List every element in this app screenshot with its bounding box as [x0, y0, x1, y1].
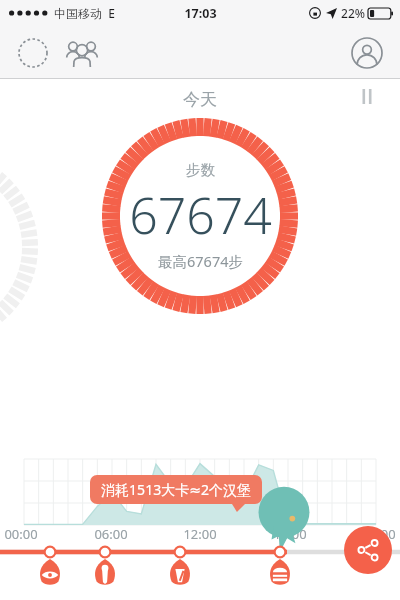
staticText: 67674: [129, 181, 272, 249]
staticText: 12:00: [183, 525, 217, 543]
staticText: 06:00: [94, 525, 128, 543]
button[interactable]: Calories tooltip: [90, 475, 262, 512]
staticText: 22%: [341, 5, 365, 21]
button[interactable]: Meal 2: [89, 544, 121, 592]
button[interactable]: Meal 3: [164, 544, 196, 592]
button[interactable]: Pause: [352, 81, 382, 111]
staticText: 18:00: [273, 525, 307, 543]
staticText: 中国移动: [54, 6, 102, 21]
button[interactable]: Meal 4: [264, 544, 296, 592]
staticText: 17:03: [184, 5, 217, 22]
staticText: E: [108, 5, 115, 21]
staticText: 今天: [183, 89, 217, 110]
button[interactable]: Activity ring: [14, 34, 52, 72]
button[interactable]: Meal 1: [34, 544, 66, 592]
staticText: 步数: [186, 161, 215, 179]
staticText: 最高67674步: [158, 251, 243, 271]
staticText: 00:00: [4, 525, 38, 543]
staticText: 24:00: [362, 525, 396, 543]
button[interactable]: Profile: [347, 33, 387, 73]
button[interactable]: Share: [344, 526, 392, 574]
button[interactable]: Friends: [62, 33, 102, 73]
staticText: 消耗1513大卡≈2个汉堡: [101, 480, 251, 499]
